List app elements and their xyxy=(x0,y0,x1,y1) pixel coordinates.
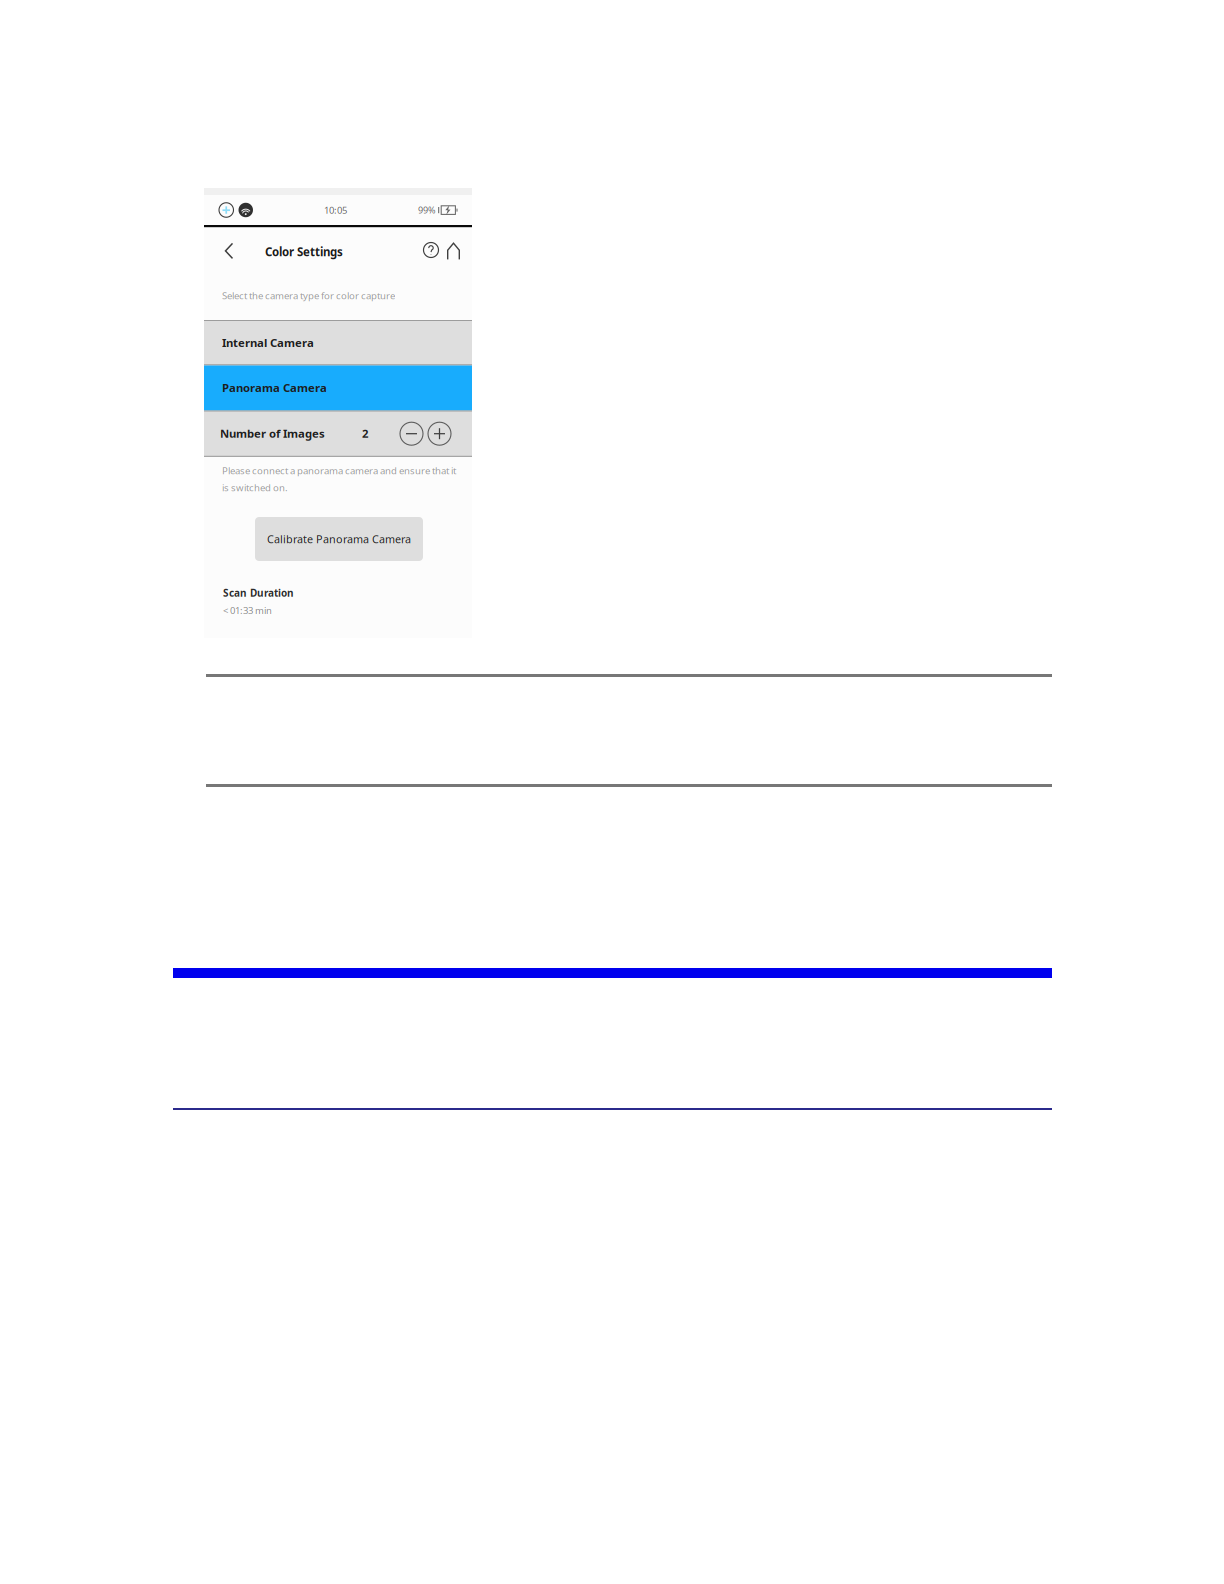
staticText: < 01:33 min xyxy=(223,604,272,617)
staticText: Scan Duration xyxy=(223,586,294,600)
staticText: Color Settings xyxy=(265,244,343,260)
button[interactable]: Back xyxy=(216,236,242,266)
staticText: 10:05 xyxy=(324,204,347,216)
staticText: Select the camera type for color capture xyxy=(222,289,395,302)
staticText: Please connect a panorama camera and ens… xyxy=(222,464,456,494)
button[interactable]: Internal Camera xyxy=(204,321,472,364)
button[interactable]: Panorama Camera xyxy=(204,365,472,410)
button[interactable]: Help xyxy=(422,240,440,260)
staticText: 99% xyxy=(418,204,436,216)
staticText: Number of Images xyxy=(220,426,325,441)
button[interactable]: Number of Images xyxy=(204,412,472,456)
staticText: Calibrate Panorama Camera xyxy=(267,532,411,546)
button[interactable]: Home xyxy=(446,241,461,261)
staticText: 2 xyxy=(362,426,368,441)
button[interactable]: Calibrate Panorama Camera xyxy=(255,517,423,561)
staticText: Panorama Camera xyxy=(222,380,327,395)
staticText: Internal Camera xyxy=(222,335,314,350)
